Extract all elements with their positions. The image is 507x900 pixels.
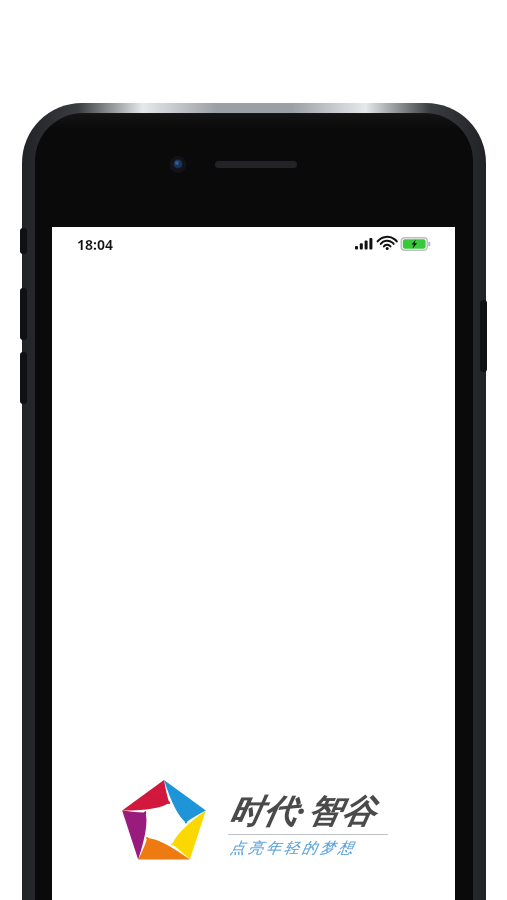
other: Signal, Wi-Fi and battery status — [355, 236, 433, 252]
staticText: 点亮年轻的梦想 — [228, 839, 354, 858]
button[interactable]: 时代·智谷 — [52, 775, 455, 870]
staticText: 时代·智谷 — [228, 788, 375, 833]
staticText: 18:04 — [77, 235, 113, 254]
